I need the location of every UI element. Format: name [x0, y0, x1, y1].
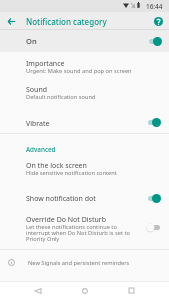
staticText: Notification category — [26, 16, 107, 27]
button[interactable]: Help — [150, 13, 167, 30]
staticText: On — [26, 36, 37, 46]
staticText: Show notification dot — [26, 194, 96, 204]
staticText: Urgent: Make sound and pop on screen — [26, 67, 132, 75]
staticText: Priority Only — [26, 235, 60, 243]
button[interactable]: Override Do Not Disturb — [0, 211, 169, 245]
staticText: Sound — [26, 85, 48, 95]
button[interactable] — [0, 156, 169, 180]
button[interactable]: Recent apps — [122, 281, 141, 300]
button[interactable]: Back — [28, 281, 47, 300]
staticText: New Signals and persistent reminders — [28, 259, 130, 267]
staticText: On the lock screen — [26, 161, 87, 171]
button[interactable]: Show notification dot — [0, 186, 169, 208]
staticText: 16:44 — [146, 2, 163, 11]
button[interactable]: New Signals and persistent reminders — [0, 250, 169, 275]
staticText: Hide sensitive notification content — [26, 169, 117, 177]
staticText: interrupt when Do Not Disturb is set to — [26, 229, 130, 237]
staticText: Let these notifications continue to — [26, 223, 117, 231]
staticText: Importance — [26, 59, 65, 69]
staticText: Default notification sound — [26, 93, 96, 101]
staticText: Override Do Not Disturb — [26, 215, 107, 225]
button[interactable]: On — [0, 30, 169, 52]
button[interactable]: Navigate up — [3, 13, 20, 30]
staticText: Advanced — [26, 145, 56, 154]
button[interactable]: Vibrate — [0, 110, 169, 132]
button[interactable]: Home — [75, 281, 94, 300]
staticText: Vibrate — [26, 119, 50, 129]
button[interactable] — [0, 80, 169, 104]
button[interactable] — [0, 54, 169, 78]
